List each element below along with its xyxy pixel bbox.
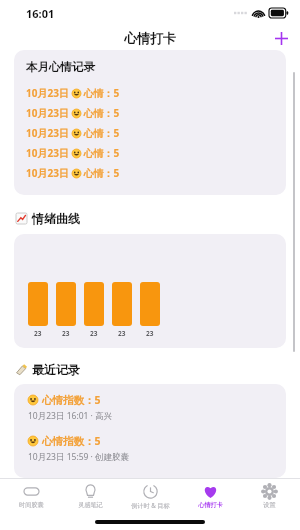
staticText: 心情打卡 <box>198 501 223 509</box>
button[interactable]: 心情打卡 <box>181 479 239 513</box>
staticText: 心情：5 <box>81 166 120 180</box>
staticText: 23 <box>62 329 70 338</box>
staticText: 心情打卡 <box>124 30 176 46</box>
staticText: 心情指数：5 <box>42 393 101 407</box>
staticText: 10月23日 <box>26 126 72 140</box>
button[interactable]: 23 <box>14 234 286 348</box>
staticText: 最近记录 <box>32 362 80 377</box>
staticText: 10月23日 <box>26 106 72 120</box>
button[interactable]: 心情指数：5 <box>28 393 274 434</box>
staticText: 10月23日 16:01 · 高兴 <box>28 410 113 422</box>
staticText: 23 <box>90 329 98 338</box>
button[interactable]: 心情指数：5 <box>28 434 274 475</box>
staticText: 情绪曲线 <box>32 211 80 226</box>
staticText: 16:01 <box>26 6 55 21</box>
staticText: 灵感笔记 <box>78 501 103 509</box>
staticText: 10月23日 <box>26 146 72 160</box>
button[interactable]: 时间胶囊 <box>2 479 60 513</box>
button[interactable]: 倒计时 & 目标 <box>121 479 179 513</box>
staticText: 心情：5 <box>81 126 120 140</box>
staticText: 10月23日 15:59 · 创建胶囊 <box>28 451 130 463</box>
button[interactable]: 灵感笔记 <box>61 479 119 513</box>
staticText: 时间胶囊 <box>19 501 44 509</box>
staticText: 23 <box>146 329 154 338</box>
staticText: 心情：5 <box>81 146 120 160</box>
button[interactable]: 设置 <box>240 479 298 513</box>
staticText: 本月心情记录 <box>26 60 95 74</box>
staticText: 23 <box>118 329 126 338</box>
staticText: 心情指数：5 <box>42 434 101 448</box>
staticText: 10月23日 <box>26 166 72 180</box>
button[interactable]: Add mood record <box>270 27 292 49</box>
staticText: 10月23日 <box>26 86 72 100</box>
staticText: 倒计时 & 目标 <box>131 501 170 509</box>
staticText: 23 <box>34 329 42 338</box>
staticText: 心情：5 <box>81 86 120 100</box>
button[interactable]: 本月心情记录 <box>14 50 286 195</box>
staticText: 心情：5 <box>81 106 120 120</box>
staticText: 设置 <box>263 501 276 509</box>
